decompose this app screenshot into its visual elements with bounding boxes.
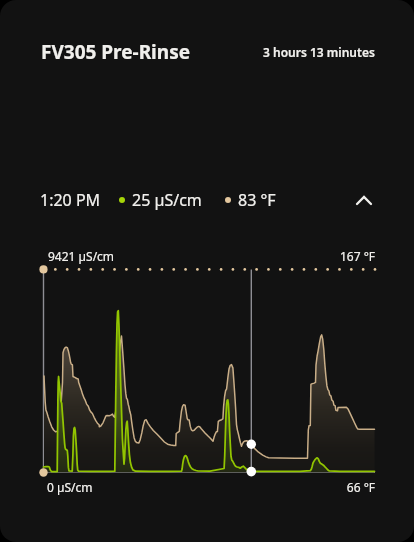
staticText: 3 hours 13 minutes xyxy=(263,44,375,60)
staticText: 25 µS/cm xyxy=(132,189,202,211)
button[interactable]: 1:20 PM xyxy=(40,186,377,214)
staticText: 66 °F xyxy=(325,479,375,495)
staticText: 1:20 PM xyxy=(40,189,101,211)
staticText: 167 °F xyxy=(325,248,375,264)
staticText: 0 µS/cm xyxy=(47,479,93,495)
staticText: FV305 Pre-Rinse xyxy=(41,39,191,65)
staticText: 9421 µS/cm xyxy=(48,248,115,264)
button[interactable]: Collapse details xyxy=(351,187,377,213)
staticText: 83 °F xyxy=(238,189,276,211)
